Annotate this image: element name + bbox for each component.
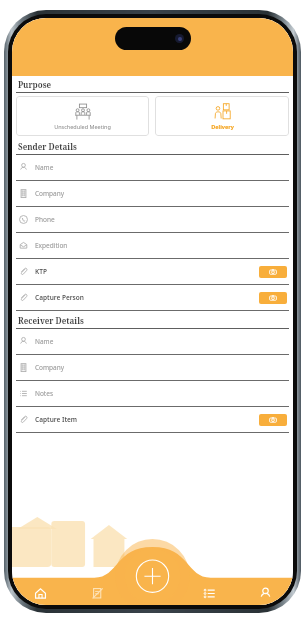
staticText: Company: [35, 363, 65, 372]
staticText: Expedition: [35, 241, 68, 250]
staticText: Capture Item: [35, 415, 78, 424]
button[interactable]: Capture Person: [12, 285, 293, 311]
button[interactable]: Name: [12, 329, 293, 355]
button[interactable]: Profile: [237, 581, 293, 605]
button[interactable]: Capture photo: [259, 266, 287, 278]
staticText: Notes: [35, 389, 53, 398]
staticText: Name: [35, 337, 54, 346]
staticText: Receiver Details: [18, 315, 84, 326]
button[interactable]: List: [181, 581, 237, 605]
staticText: Name: [35, 163, 54, 172]
button[interactable]: Notes: [12, 381, 293, 407]
button[interactable]: Company: [12, 355, 293, 381]
staticText: Purpose: [18, 79, 52, 90]
button[interactable]: Name: [12, 155, 293, 181]
staticText: Phone: [35, 215, 55, 224]
staticText: Unscheduled Meeting: [54, 123, 111, 130]
staticText: Delivery: [211, 123, 234, 130]
button[interactable]: Capture photo: [259, 414, 287, 426]
staticText: Capture Person: [35, 293, 84, 302]
button[interactable]: Home: [12, 581, 69, 605]
button[interactable]: Capture photo: [259, 292, 287, 304]
button[interactable]: KTP: [12, 259, 293, 285]
staticText: Sender Details: [18, 141, 77, 152]
button[interactable]: Phone: [12, 207, 293, 233]
button[interactable]: Tasks: [69, 581, 125, 605]
button[interactable]: Add: [12, 565, 293, 605]
button[interactable]: Unscheduled Meeting: [16, 96, 149, 136]
button[interactable]: Expedition: [12, 233, 293, 259]
button[interactable]: Delivery: [155, 96, 289, 136]
staticText: KTP: [35, 267, 47, 276]
button[interactable]: Company: [12, 181, 293, 207]
button[interactable]: Capture Item: [12, 407, 293, 433]
staticText: Company: [35, 189, 65, 198]
